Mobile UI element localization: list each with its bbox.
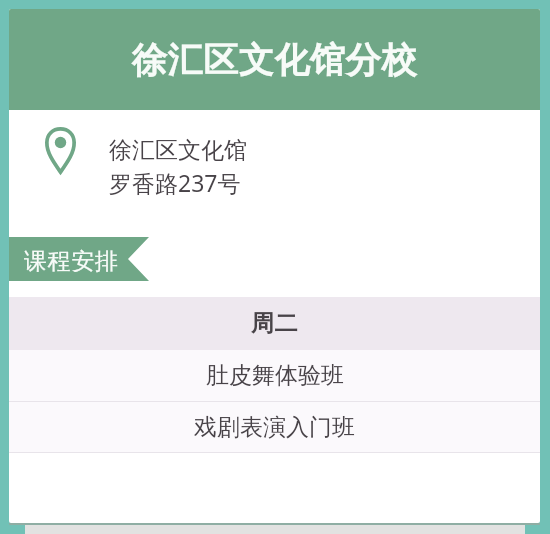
other: Location	[45, 127, 76, 174]
button[interactable]: 课程安排	[9, 237, 149, 281]
staticText: 戏剧表演入门班	[194, 413, 355, 442]
button[interactable]: 周二	[9, 297, 540, 350]
staticText: 周二	[251, 309, 299, 338]
staticText: 肚皮舞体验班	[206, 361, 344, 390]
button[interactable]: 戏剧表演入门班	[9, 402, 540, 452]
button[interactable]: Location	[9, 110, 540, 237]
staticText: 课程安排	[24, 247, 119, 276]
staticText: 罗香路237号	[109, 167, 241, 198]
staticText: 徐汇区文化馆分校	[132, 38, 417, 82]
staticText: 徐汇区文化馆	[109, 136, 247, 165]
button[interactable]: 肚皮舞体验班	[9, 350, 540, 401]
